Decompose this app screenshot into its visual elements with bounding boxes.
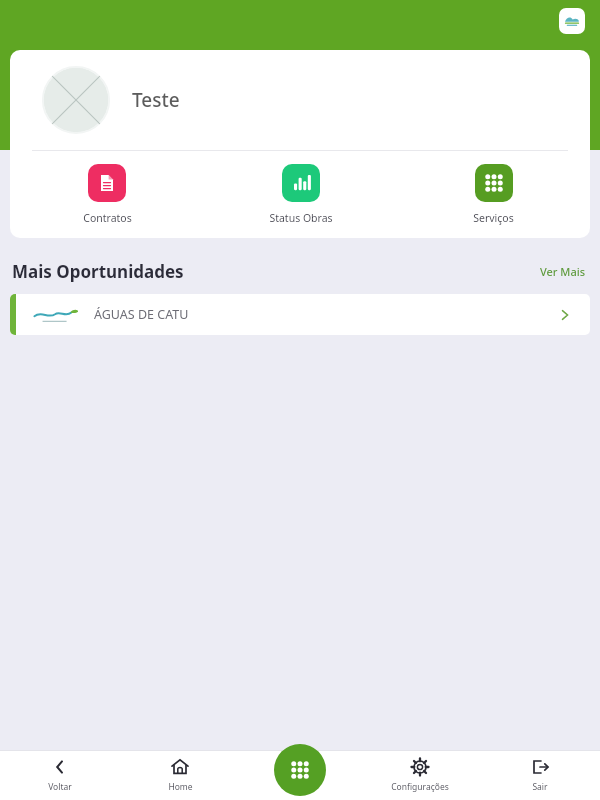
staticText: Status Obras [269, 211, 333, 225]
staticText: Voltar [48, 781, 72, 793]
staticText: Home [168, 781, 193, 793]
other: Configurações [410, 757, 430, 777]
staticText: ÁGUAS DE CATU [94, 306, 189, 323]
staticText: Configurações [391, 781, 449, 793]
button[interactable]: Home [120, 750, 240, 800]
button[interactable]: Voltar [0, 750, 120, 800]
staticText: Ver Mais [540, 264, 586, 279]
other: Home [170, 757, 190, 777]
staticText: Mais Oportunidades [12, 260, 184, 283]
other: Voltar [50, 757, 70, 777]
button[interactable]: Logo [559, 8, 585, 34]
staticText: Serviços [473, 211, 514, 225]
staticText: Teste [132, 87, 180, 113]
button[interactable]: Menu [274, 744, 326, 796]
button[interactable]: Contratos [10, 160, 204, 229]
staticText: Sair [532, 781, 548, 793]
button[interactable]: Sair [480, 750, 600, 800]
button[interactable]: Status Obras [204, 160, 397, 229]
other: Sair [530, 757, 550, 777]
button[interactable]: ÁGUAS DE CATU [10, 294, 590, 335]
button[interactable]: Configurações [360, 750, 480, 800]
button[interactable]: Serviços [397, 160, 590, 229]
staticText: Contratos [83, 211, 132, 225]
button[interactable]: Ver Mais [540, 264, 586, 279]
